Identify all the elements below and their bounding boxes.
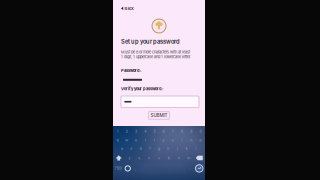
button[interactable]: y	[159, 136, 168, 144]
button[interactable]: s	[127, 144, 136, 153]
button[interactable]: z	[124, 153, 134, 163]
staticText: c	[148, 156, 150, 160]
button[interactable]: ?123	[113, 163, 123, 174]
button[interactable]: ,	[132, 163, 139, 174]
staticText: p	[199, 138, 201, 142]
staticText: 4	[144, 129, 146, 134]
button[interactable]: x	[134, 153, 144, 163]
button[interactable]: d	[136, 144, 145, 153]
staticText: 6	[163, 129, 165, 134]
staticText: w	[125, 138, 128, 142]
button[interactable]: t	[150, 136, 159, 144]
button[interactable]: a	[117, 144, 127, 153]
button[interactable]: SUBMIT	[148, 112, 169, 119]
staticText: n	[178, 156, 180, 160]
button[interactable]: n	[174, 153, 184, 163]
button[interactable]: o	[187, 136, 196, 144]
staticText: q	[117, 138, 119, 142]
staticText: 7	[172, 129, 174, 134]
staticText: j	[177, 146, 178, 151]
button[interactable]: j	[173, 144, 182, 153]
button[interactable]: l	[191, 144, 201, 153]
staticText: u	[172, 138, 174, 142]
staticText: y	[163, 138, 165, 142]
staticText: Set up your password	[121, 38, 180, 45]
button[interactable]: 5	[150, 127, 159, 136]
staticText: 1	[117, 129, 118, 134]
button[interactable]: m	[184, 153, 193, 163]
button[interactable]: u	[168, 136, 177, 144]
staticText: 9	[190, 129, 192, 134]
staticText: .	[189, 166, 190, 171]
button[interactable]: g	[154, 144, 164, 153]
staticText: m	[187, 156, 190, 160]
button[interactable]: 2	[122, 127, 131, 136]
staticText: s	[130, 146, 132, 151]
staticText: h	[167, 146, 169, 151]
staticText: e	[135, 138, 137, 142]
staticText: SUBMIT	[150, 113, 167, 118]
staticText: 2	[126, 129, 128, 134]
button[interactable]: 9	[187, 127, 196, 136]
staticText: Must be 8 or more characters with at lea…	[121, 50, 191, 59]
staticText: r	[145, 138, 146, 142]
staticText: Back	[125, 6, 134, 11]
staticText: ,	[135, 166, 136, 171]
button[interactable]: 8	[177, 127, 187, 136]
button[interactable]: 7	[168, 127, 177, 136]
button[interactable]: f	[145, 144, 154, 153]
staticText: g	[158, 146, 160, 151]
staticText: ?123	[115, 166, 122, 170]
staticText: d	[139, 146, 141, 151]
staticText: o	[190, 138, 192, 142]
button[interactable]: 1	[113, 127, 122, 136]
button[interactable]: k	[182, 144, 191, 153]
button[interactable]: e	[131, 136, 141, 144]
button[interactable]: c	[144, 153, 154, 163]
button[interactable]: b	[164, 153, 174, 163]
button[interactable]: p	[196, 136, 205, 144]
button[interactable]: 0	[196, 127, 205, 136]
button[interactable]: Enter	[193, 163, 205, 174]
button[interactable]: h	[164, 144, 173, 153]
staticText: a	[121, 146, 123, 151]
button[interactable]: w	[122, 136, 131, 144]
button[interactable]: 6	[159, 127, 168, 136]
button[interactable]: 3	[131, 127, 141, 136]
button[interactable]: r	[141, 136, 150, 144]
button[interactable]: Back	[119, 4, 136, 13]
button[interactable]: v	[154, 153, 164, 163]
staticText: 3	[135, 129, 137, 134]
staticText: f	[149, 146, 150, 151]
staticText: k	[186, 146, 188, 151]
staticText: Verify your password:	[121, 86, 163, 91]
staticText: 0	[199, 129, 201, 134]
button[interactable]: Switch keyboard	[123, 163, 132, 174]
staticText: t	[154, 138, 155, 142]
staticText: 8	[181, 129, 183, 134]
staticText: v	[158, 156, 160, 160]
button[interactable]: Shift	[113, 153, 124, 163]
button[interactable]: q	[113, 136, 122, 144]
button[interactable]: .	[186, 163, 193, 174]
button[interactable]: Space	[139, 163, 186, 174]
staticText: b	[168, 156, 170, 160]
button[interactable]: 4	[141, 127, 150, 136]
staticText: x	[138, 156, 140, 160]
staticText: z	[128, 156, 130, 160]
staticText: 5	[153, 129, 155, 134]
staticText: Password:	[121, 68, 141, 73]
button[interactable]: i	[177, 136, 187, 144]
button[interactable]: Delete	[193, 153, 205, 163]
